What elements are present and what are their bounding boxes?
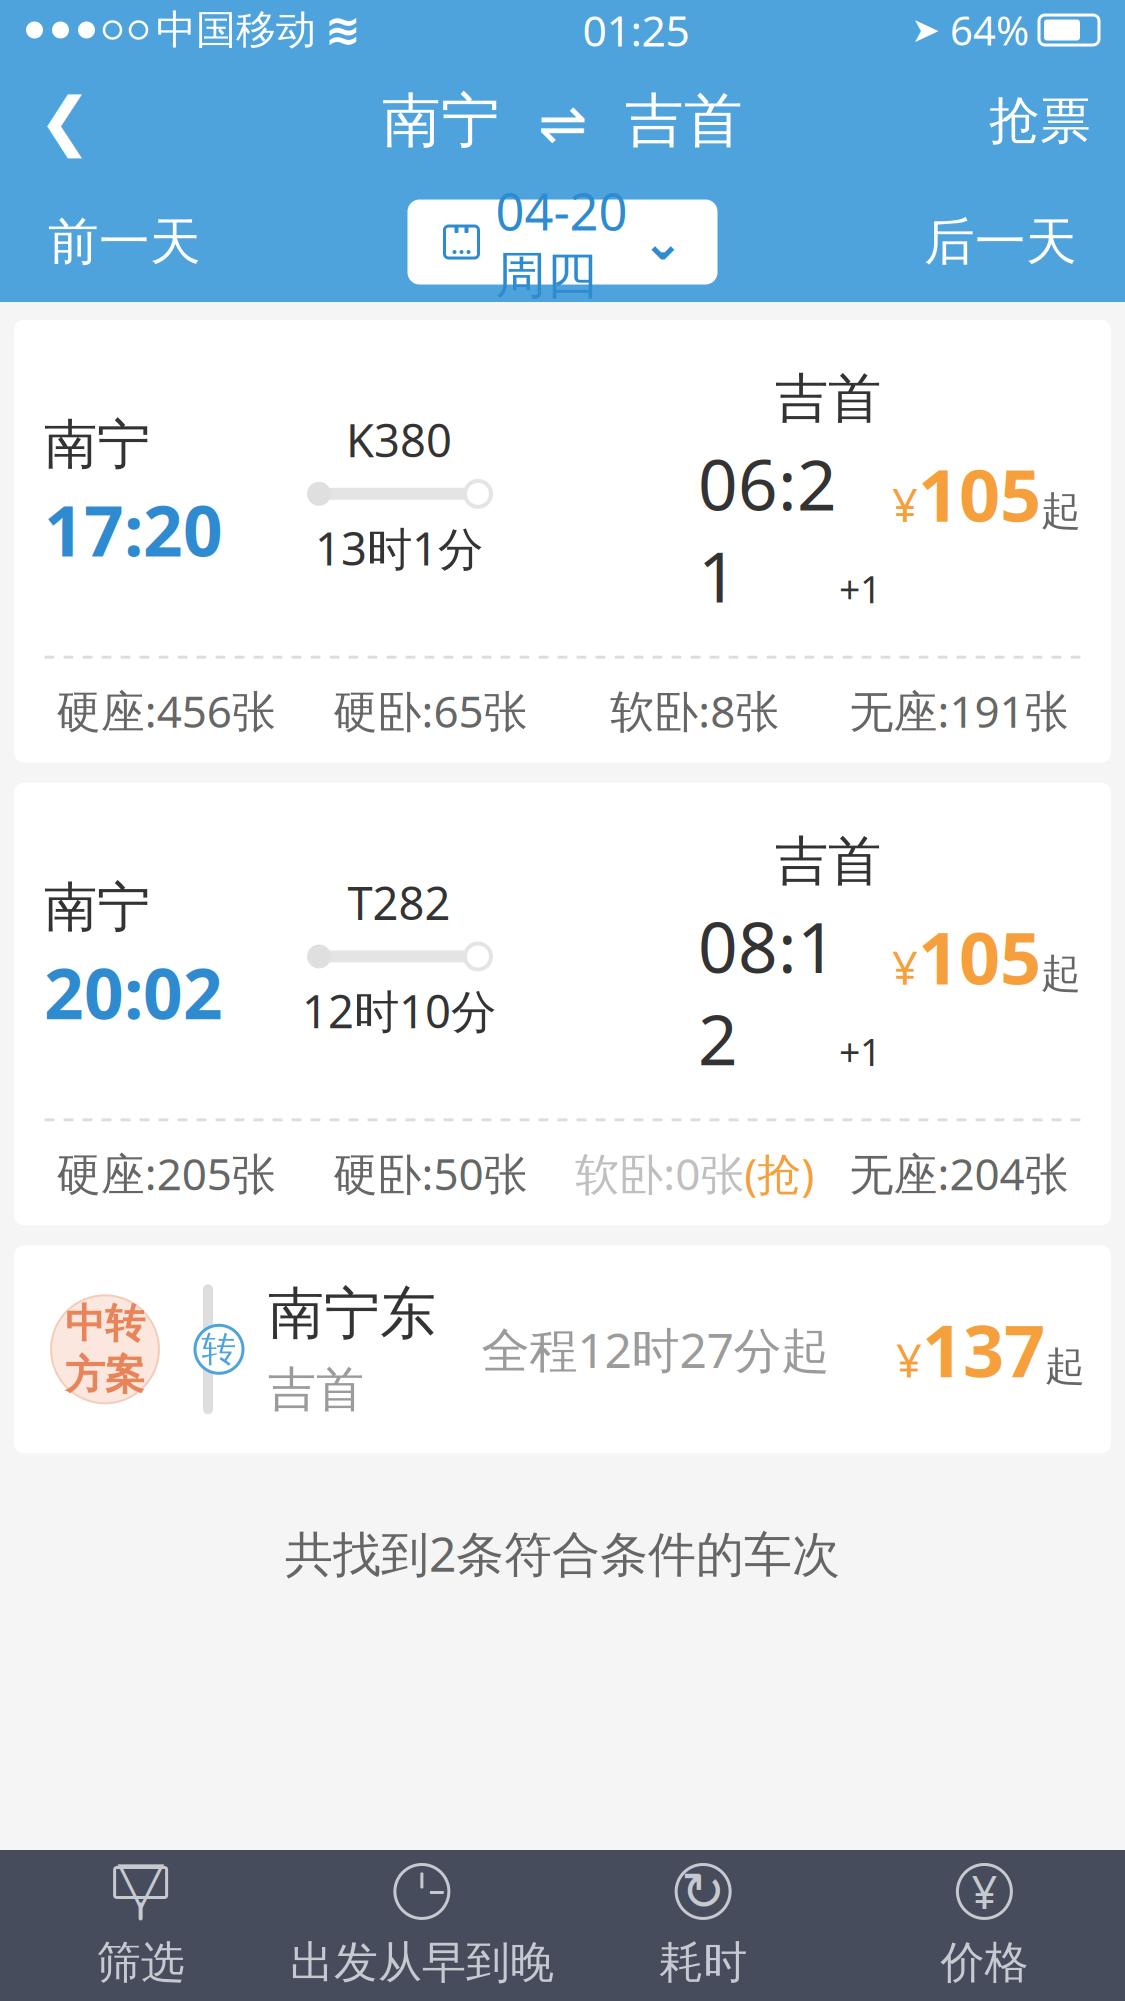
staticText: ❮: [38, 85, 92, 157]
staticText: 价格: [940, 1935, 1028, 1989]
staticText: ⌄: [641, 213, 683, 271]
staticText: 硬卧:65张: [333, 681, 527, 740]
staticText: ➤: [911, 10, 940, 50]
button[interactable]: ¥: [844, 1850, 1125, 2001]
staticText: 前一天: [48, 211, 201, 273]
staticText: 软卧:8张: [610, 681, 779, 740]
staticText: 南宁: [44, 412, 150, 477]
button[interactable]: 中转: [14, 1245, 1111, 1453]
staticText: 吉首: [268, 1360, 364, 1419]
staticText: 64%: [950, 3, 1029, 56]
staticText: 起: [1041, 949, 1081, 998]
staticText: 出发从早到晚: [290, 1935, 554, 1989]
staticText: K380: [346, 410, 452, 470]
staticText: ▽: [117, 1848, 164, 1917]
staticText: 吉首: [775, 829, 881, 894]
staticText: 后一天: [924, 211, 1077, 273]
staticText: 硬卧:50张: [333, 1144, 527, 1202]
staticText: 起: [1041, 486, 1081, 536]
staticText: 南宁 ⇌ 吉首: [382, 85, 743, 157]
staticText: ¥: [896, 1330, 922, 1390]
staticText: 中国移动: [156, 5, 316, 54]
button[interactable]: 出发从早到晚: [281, 1850, 562, 2001]
staticText: 06:21: [698, 437, 837, 622]
button[interactable]: 返回: [10, 66, 120, 176]
button[interactable]: 前一天: [28, 196, 221, 288]
staticText: 13时1分: [315, 518, 483, 578]
staticText: 抢票: [989, 90, 1091, 152]
button[interactable]: 南宁: [14, 783, 1111, 1225]
staticText: T282: [347, 872, 450, 932]
staticText: +1: [839, 564, 881, 614]
staticText: 筛选: [97, 1935, 185, 1989]
staticText: 耗时: [659, 1935, 747, 1989]
staticText: 软卧:0张: [575, 1144, 744, 1202]
staticText: 硬座:205张: [57, 1144, 276, 1202]
button[interactable]: ▽: [0, 1850, 281, 2001]
button[interactable]: 抢票: [965, 66, 1115, 176]
staticText: 起: [1045, 1342, 1085, 1391]
staticText: 无座:191张: [849, 681, 1068, 740]
staticText: 105: [918, 446, 1041, 542]
staticText: +1: [839, 1027, 881, 1076]
button[interactable]: 南宁: [14, 320, 1111, 763]
staticText: 01:25: [582, 2, 689, 58]
staticText: ¥: [892, 937, 918, 997]
staticText: ¥: [892, 474, 918, 535]
staticText: 08:12: [698, 900, 837, 1084]
staticText: (抢): [744, 1144, 814, 1202]
staticText: 137: [922, 1301, 1045, 1397]
staticText: 硬座:456张: [57, 681, 276, 740]
staticText: 20:02: [44, 946, 223, 1038]
button[interactable]: 04-20 周四: [407, 199, 717, 284]
staticText: 17:20: [44, 483, 223, 576]
staticText: 12时10分: [302, 980, 496, 1041]
staticText: 105: [918, 909, 1041, 1004]
staticText: 南宁: [44, 875, 150, 940]
staticText: ↻: [681, 1861, 726, 1922]
staticText: ¥: [971, 1861, 997, 1922]
staticText: 吉首: [775, 366, 881, 431]
staticText: 中转: [65, 1299, 145, 1348]
staticText: 无座:204张: [849, 1144, 1068, 1202]
staticText: ≋: [325, 6, 361, 54]
button[interactable]: 后一天: [904, 196, 1097, 288]
staticText: 共找到2条符合条件的车次: [285, 1521, 840, 1585]
button[interactable]: ↻: [562, 1850, 844, 2001]
staticText: 04-20 周四: [495, 177, 627, 307]
staticText: 转: [201, 1328, 236, 1371]
staticText: 全程12时27分起: [481, 1317, 829, 1381]
staticText: 南宁东: [268, 1279, 436, 1348]
staticText: 方案: [65, 1350, 145, 1399]
